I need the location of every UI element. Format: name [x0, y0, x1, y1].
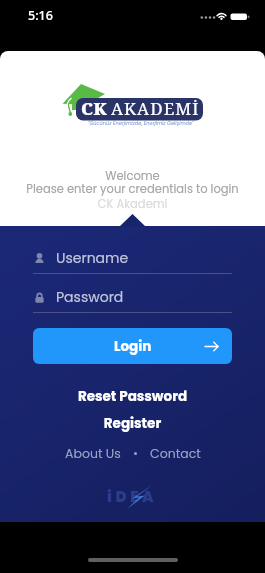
staticText: Please enter your credentials to login: [0, 181, 265, 197]
staticText: Welcome: [0, 168, 265, 184]
button[interactable]: Password: [33, 287, 232, 313]
button[interactable]: About Us: [65, 445, 121, 462]
button[interactable]: Register: [0, 414, 265, 433]
staticText: Login: [114, 337, 152, 356]
staticText: iDEA: [107, 486, 158, 507]
staticText: CK: [81, 97, 108, 120]
button[interactable]: Username: [33, 248, 232, 274]
staticText: Username: [56, 248, 129, 268]
staticText: AKADEMİ: [111, 97, 200, 120]
staticText: 5:16: [28, 7, 53, 24]
button[interactable]: Contact: [150, 445, 201, 462]
button[interactable]: Login: [33, 328, 232, 364]
button[interactable]: Reset Password: [0, 387, 265, 406]
staticText: "Gücünüz Enerjimizde, Enerjimiz Gelişimd…: [88, 120, 194, 127]
staticText: Password: [56, 287, 124, 307]
staticText: CK Akademi: [0, 196, 265, 212]
